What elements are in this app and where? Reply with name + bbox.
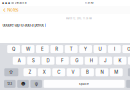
button[interactable]: Y (79, 45, 92, 53)
button[interactable]: ‹ (0, 6, 20, 14)
staticText: double tap to add a period (2, 23, 44, 27)
staticText: March 12, 2015, 11:39 AM (66, 17, 92, 20)
button[interactable]: O (122, 45, 130, 53)
staticText: ≈ (25, 1, 27, 5)
button[interactable]: I (108, 45, 121, 53)
staticText: Q (12, 46, 15, 52)
staticText: C (57, 70, 60, 75)
staticText: X (43, 70, 46, 75)
button[interactable]: J (99, 57, 112, 65)
button[interactable]: D (42, 57, 54, 65)
staticText: ψ (35, 81, 38, 86)
button[interactable]: N (95, 68, 108, 76)
button[interactable]: ☻ (17, 80, 29, 88)
button[interactable]: Q (7, 45, 20, 53)
staticText: space (79, 82, 89, 86)
staticText: 11:39 AM (85, 2, 94, 4)
button[interactable]: W (22, 45, 34, 53)
staticText: F (61, 58, 64, 63)
staticText: A (18, 58, 21, 63)
button[interactable]: Z (23, 68, 36, 76)
button[interactable]: L (128, 57, 130, 65)
staticText: T (70, 46, 73, 52)
staticText: V (72, 70, 75, 75)
button[interactable]: M (110, 68, 123, 76)
staticText: E (41, 46, 44, 52)
staticText: O (127, 46, 130, 52)
staticText: Verizon (15, 1, 24, 5)
button[interactable]: ⇧ (4, 68, 18, 76)
button[interactable]: space (44, 80, 125, 88)
button[interactable]: B (81, 68, 94, 76)
staticText: N (100, 70, 103, 75)
staticText: ⇧ (9, 70, 14, 75)
staticText: I (114, 46, 115, 52)
staticText: G (75, 58, 78, 63)
button[interactable]: E (36, 45, 49, 53)
staticText: W (26, 46, 30, 52)
staticText: S (32, 58, 35, 63)
staticText: H (90, 58, 93, 63)
staticText: K (118, 58, 121, 63)
staticText: Y (84, 46, 87, 52)
staticText: Z (28, 70, 31, 75)
staticText: D (46, 58, 49, 63)
staticText: M (114, 70, 118, 75)
staticText: Notes (7, 7, 18, 13)
button[interactable]: T (65, 45, 78, 53)
button[interactable]: K (114, 57, 126, 65)
staticText: 123 (7, 82, 12, 86)
button[interactable]: A (13, 57, 26, 65)
staticText: ☻ (21, 81, 25, 86)
button[interactable]: ψ (30, 80, 42, 88)
button[interactable]: S (27, 57, 40, 65)
button[interactable]: U (94, 45, 106, 53)
button[interactable]: V (67, 68, 79, 76)
staticText: U (98, 46, 101, 52)
button[interactable]: C (52, 68, 65, 76)
button[interactable]: F (56, 57, 69, 65)
button[interactable]: X (38, 68, 51, 76)
button[interactable]: H (85, 57, 98, 65)
staticText: ‹ (3, 6, 6, 14)
button[interactable]: G (70, 57, 83, 65)
button[interactable]: return (126, 80, 130, 88)
button[interactable]: 123 (4, 80, 16, 88)
staticText: B (86, 70, 89, 75)
staticText: R (55, 46, 58, 52)
button[interactable]: R (50, 45, 63, 53)
staticText: ••• (2, 0, 11, 6)
staticText: J (104, 58, 107, 63)
button[interactable]: ⌫ (128, 68, 130, 76)
